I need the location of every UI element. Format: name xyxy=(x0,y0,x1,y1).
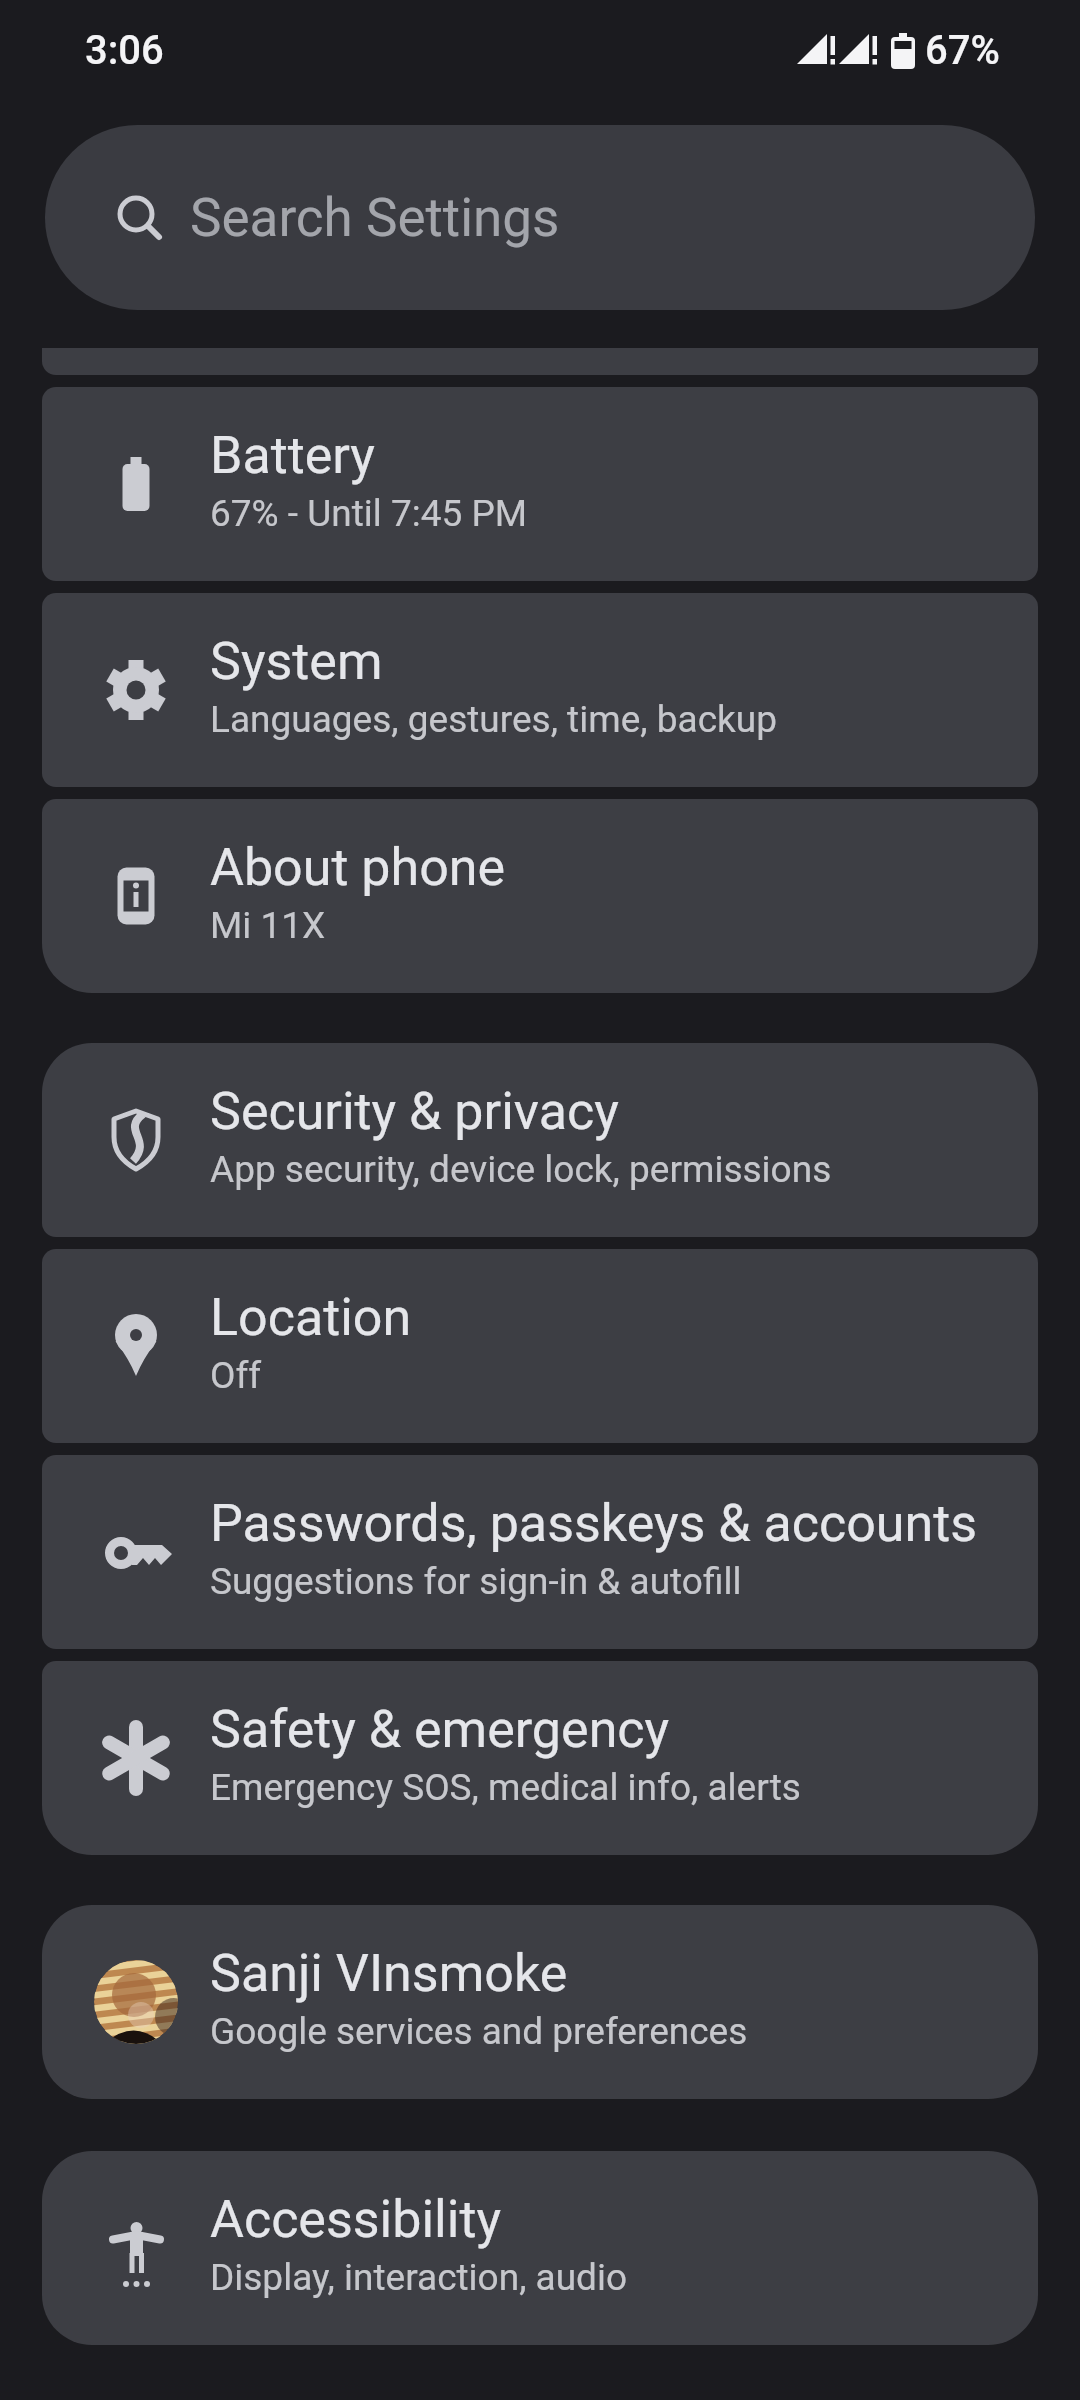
button[interactable]: Passwords, passkeys & accounts xyxy=(42,1455,1038,1649)
button[interactable]: About phone xyxy=(42,799,1038,993)
button[interactable]: Search Settings xyxy=(45,125,1035,310)
button[interactable]: Battery xyxy=(42,387,1038,581)
button[interactable]: Security & privacy xyxy=(42,1043,1038,1237)
staticText: 3:06 xyxy=(85,27,164,74)
staticText: Display, interaction, audio xyxy=(210,2256,628,2299)
staticText: Location xyxy=(210,1287,412,1348)
staticText: Suggestions for sign-in & autofill xyxy=(210,1560,742,1603)
staticText: Battery xyxy=(210,425,375,486)
staticText: Mi 11X xyxy=(210,904,326,947)
button[interactable]: Safety & emergency xyxy=(42,1661,1038,1855)
staticText: Passwords, passkeys & accounts xyxy=(210,1493,978,1554)
button[interactable]: Sanji VInsmoke xyxy=(42,1905,1038,2099)
staticText: Security & privacy xyxy=(210,1081,619,1142)
staticText: App security, device lock, permissions xyxy=(210,1148,832,1191)
staticText: Google services and preferences xyxy=(210,2010,748,2053)
staticText: System xyxy=(210,631,383,692)
staticText: Sanji VInsmoke xyxy=(210,1943,568,2004)
staticText: Search Settings xyxy=(190,187,560,249)
staticText: 67% xyxy=(925,27,1000,74)
staticText: Languages, gestures, time, backup xyxy=(210,698,777,741)
staticText: About phone xyxy=(210,837,506,898)
staticText: Accessibility xyxy=(210,2189,502,2250)
staticText: 67% - Until 7:45 PM xyxy=(210,492,528,535)
staticText: Safety & emergency xyxy=(210,1699,670,1760)
button[interactable]: System xyxy=(42,593,1038,787)
button[interactable]: Location xyxy=(42,1249,1038,1443)
staticText: Emergency SOS, medical info, alerts xyxy=(210,1766,801,1809)
staticText: Off xyxy=(210,1354,262,1397)
button[interactable]: Accessibility xyxy=(42,2151,1038,2345)
